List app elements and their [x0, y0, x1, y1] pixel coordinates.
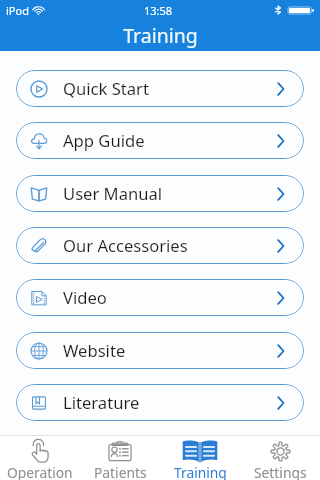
button[interactable]: Patients: [80, 436, 160, 480]
staticText: Settings: [254, 463, 307, 480]
staticText: Quick Start: [63, 77, 149, 100]
button[interactable]: Training: [160, 436, 240, 480]
button[interactable]: User Manual: [16, 175, 304, 212]
staticText: Training: [174, 463, 227, 480]
button[interactable]: Settings: [240, 436, 320, 480]
button[interactable]: Website: [16, 332, 304, 369]
staticText: Training: [123, 22, 198, 49]
button[interactable]: Operation: [0, 436, 80, 480]
staticText: 13:58: [144, 3, 173, 18]
button[interactable]: Quick Start: [16, 70, 304, 107]
staticText: App Guide: [63, 129, 145, 152]
staticText: Our Accessories: [63, 234, 188, 257]
staticText: User Manual: [63, 182, 163, 205]
staticText: Operation: [7, 463, 73, 480]
staticText: Video: [63, 286, 107, 309]
button[interactable]: Our Accessories: [16, 227, 304, 264]
staticText: Website: [63, 339, 126, 362]
button[interactable]: Literature: [16, 384, 304, 421]
staticText: Patients: [94, 463, 147, 480]
staticText: Literature: [63, 391, 140, 414]
button[interactable]: App Guide: [16, 122, 304, 159]
staticText: iPod: [6, 3, 29, 18]
button[interactable]: Video: [16, 279, 304, 316]
